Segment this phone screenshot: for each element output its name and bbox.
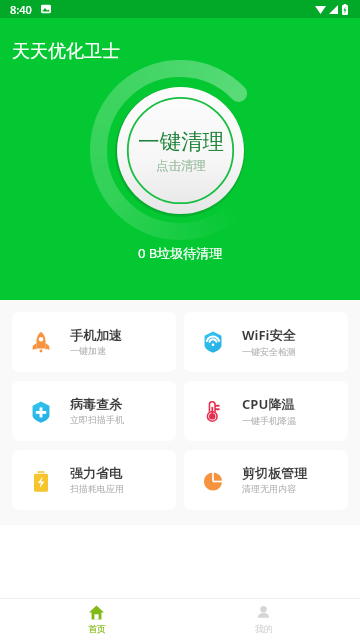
staticText: 病毒查杀 <box>70 396 122 412</box>
button[interactable]: Home <box>13 599 180 640</box>
staticText: 首页 <box>88 623 106 634</box>
staticText: CPU降温 <box>242 395 295 413</box>
staticText: 一键清理 <box>138 128 224 155</box>
staticText: 一键加速 <box>70 345 106 356</box>
other: Profile <box>256 605 271 620</box>
button[interactable]: 手机加速 <box>12 312 176 372</box>
staticText: 清理无用内容 <box>242 483 296 494</box>
button[interactable]: WiFi安全 <box>184 312 348 372</box>
staticText: 手机加速 <box>70 327 122 343</box>
button[interactable]: Profile <box>180 599 347 640</box>
button[interactable]: 病毒查杀 <box>12 381 176 441</box>
staticText: 8:40 <box>10 2 32 17</box>
staticText: 天天优化卫士 <box>12 40 120 63</box>
staticText: 我的 <box>255 623 273 634</box>
staticText: 一键安全检测 <box>242 346 296 357</box>
staticText: 扫描耗电应用 <box>70 483 124 494</box>
staticText: 0 B垃圾待清理 <box>138 244 223 262</box>
staticText: 立即扫描手机 <box>70 414 124 425</box>
button[interactable]: 剪切板管理 <box>184 450 348 510</box>
staticText: 剪切板管理 <box>242 465 307 481</box>
other: Home <box>89 605 104 620</box>
staticText: 点击清理 <box>156 158 206 174</box>
button[interactable]: 一键清理 <box>117 87 244 214</box>
button[interactable]: 强力省电 <box>12 450 176 510</box>
staticText: 强力省电 <box>70 465 122 481</box>
staticText: WiFi安全 <box>242 326 296 344</box>
button[interactable]: CPU降温 <box>184 381 348 441</box>
staticText: 一键手机降温 <box>242 415 296 426</box>
